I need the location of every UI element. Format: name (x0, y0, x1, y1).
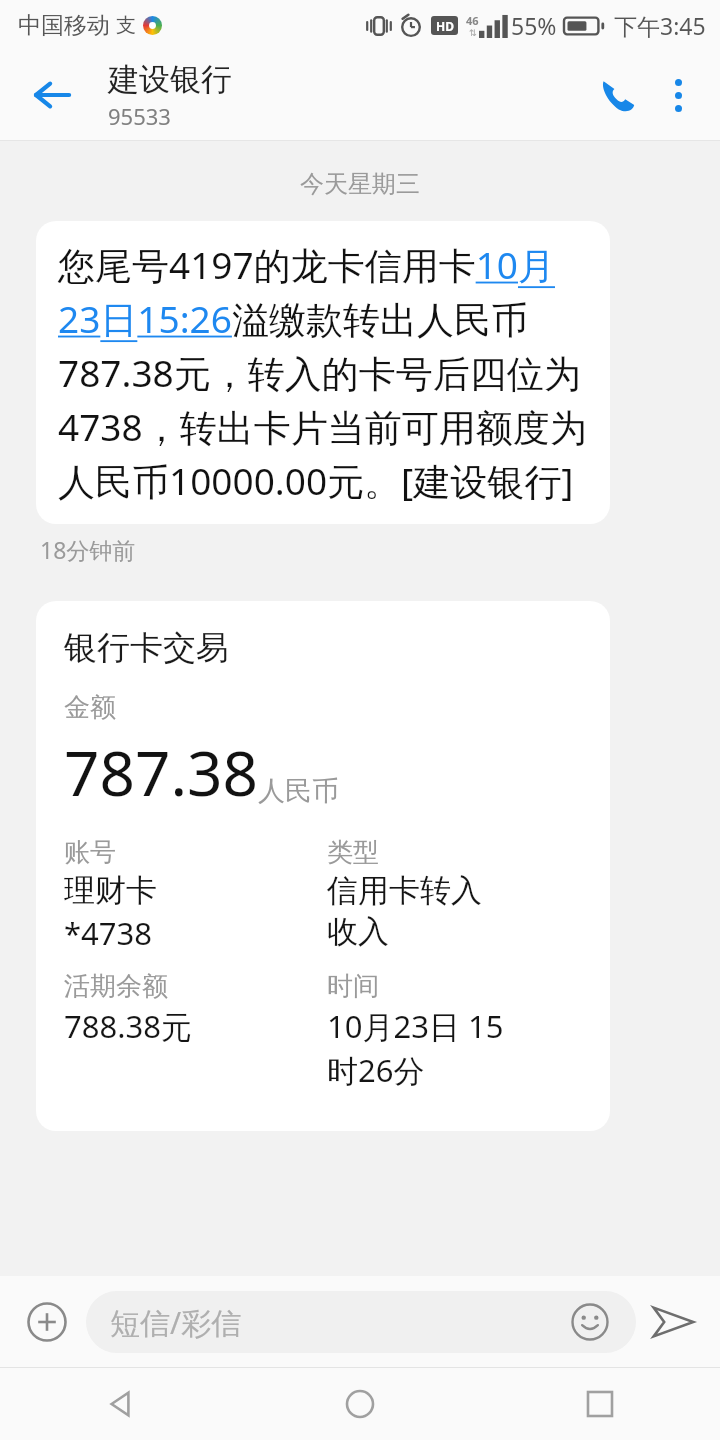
button[interactable]: 建设银行 (108, 60, 232, 131)
staticText: 金额 (64, 691, 116, 724)
staticText: 人民币 (258, 774, 339, 808)
button[interactable]: Back (20, 63, 84, 127)
staticText: 788.38元 (64, 1005, 192, 1047)
staticText: *4738 (64, 912, 153, 954)
button[interactable]: Back (0, 1368, 240, 1440)
button[interactable]: 短信/彩信 (86, 1291, 636, 1353)
staticText: 信用卡转入 (327, 871, 482, 910)
staticText: 理财卡 (64, 871, 157, 910)
button[interactable]: Call (586, 63, 650, 127)
staticText: 时26分 (327, 1049, 425, 1091)
staticText: 收入 (327, 912, 389, 951)
staticText: 账号 (64, 836, 116, 869)
staticText: 时间 (327, 970, 379, 1003)
button[interactable]: Add attachment (16, 1291, 78, 1353)
button[interactable]: Send (642, 1291, 704, 1353)
staticText: 您尾号4197的龙卡信用卡10月23日15:26溢缴款转出人民币787.38元，… (58, 239, 588, 506)
button[interactable]: More options (650, 67, 706, 123)
staticText: 建设银行 (108, 60, 232, 99)
staticText: 活期余额 (64, 970, 168, 1003)
staticText: 10月23日 15 (327, 1005, 504, 1047)
staticText: 短信/彩信 (110, 1302, 568, 1343)
staticText: 今天星期三 (300, 169, 420, 199)
staticText: 支 (116, 13, 136, 38)
button[interactable]: 您尾号4197的龙卡信用卡10月23日15:26溢缴款转出人民币787.38元，… (36, 221, 610, 524)
staticText: ⇅ (469, 28, 477, 38)
staticText: 类型 (327, 836, 379, 869)
staticText: HD (436, 18, 454, 34)
button[interactable]: 银行卡交易 (36, 601, 610, 1131)
button[interactable]: Emoji (568, 1300, 612, 1344)
staticText: 18分钟前 (40, 534, 136, 565)
staticText: 55% (511, 10, 557, 41)
staticText: 中国移动 (18, 11, 110, 40)
staticText: 46 (466, 13, 479, 28)
staticText: 下午3:45 (614, 10, 706, 41)
staticText: 银行卡交易 (64, 627, 229, 669)
button[interactable]: Home (240, 1368, 480, 1440)
staticText: 95533 (108, 101, 171, 131)
staticText: 787.38 (64, 730, 258, 814)
button[interactable]: Recent apps (480, 1368, 720, 1440)
